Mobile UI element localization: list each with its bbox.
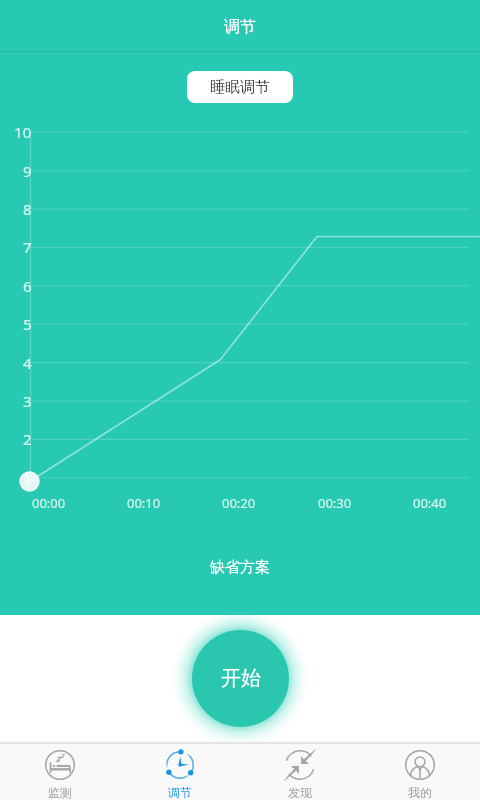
button[interactable]: 发现 — [240, 744, 360, 800]
button[interactable]: 睡眠调节 — [187, 71, 293, 103]
staticText: 调节 — [224, 17, 256, 37]
staticText: 缺省方案 — [210, 558, 270, 577]
staticText: 监测 — [48, 785, 72, 800]
staticText: 我的 — [408, 785, 432, 800]
button[interactable]: 监测 — [0, 744, 120, 800]
staticText: 调节 — [168, 785, 192, 800]
button[interactable]: 调节 — [120, 744, 240, 800]
button[interactable]: 开始 — [192, 630, 289, 727]
staticText: 开始 — [221, 666, 261, 691]
button[interactable]: 我的 — [360, 744, 480, 800]
staticText: 睡眠调节 — [210, 78, 270, 97]
staticText: 发现 — [288, 785, 312, 800]
